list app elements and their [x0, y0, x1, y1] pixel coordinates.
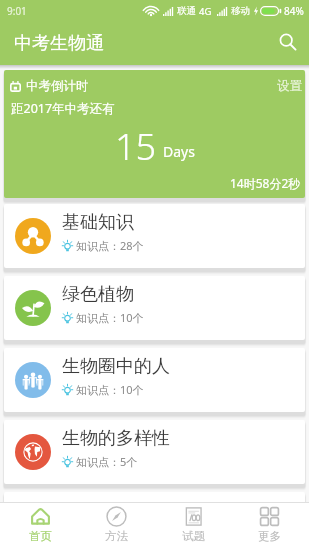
staticText: 生物圈中的人 — [62, 355, 170, 378]
staticText: 15 — [115, 122, 157, 171]
staticText: 中考生物通 — [14, 32, 104, 55]
button[interactable]: 更多 — [232, 503, 306, 550]
button[interactable]: 生物圈中的人 — [4, 348, 305, 412]
staticText: 方法 — [105, 529, 128, 543]
staticText: 移动 — [231, 5, 250, 17]
staticText: 更多 — [258, 529, 281, 543]
button[interactable]: 中考倒计时 — [4, 70, 305, 198]
staticText: 联通 — [177, 5, 196, 17]
staticText: 生物的多样性 — [62, 427, 170, 450]
staticText: 9:01 — [7, 4, 27, 18]
staticText: 知识点：28个 — [76, 238, 144, 253]
button[interactable]: 生物的多样性 — [4, 420, 305, 484]
staticText: 中考倒计时 — [26, 78, 89, 94]
staticText: 绿色植物 — [62, 283, 134, 306]
staticText: 14时58分2秒 — [230, 175, 301, 191]
staticText: 首页 — [29, 529, 52, 543]
staticText: 知识点：5个 — [76, 454, 138, 469]
button[interactable]: 基础知识 — [4, 204, 305, 268]
staticText: 设置 — [277, 78, 302, 94]
staticText: Days — [163, 142, 195, 161]
staticText: 基础知识 — [62, 211, 134, 234]
staticText: 试题 — [182, 529, 205, 543]
button[interactable]: 绿色植物 — [4, 276, 305, 340]
staticText: 84% — [284, 4, 304, 18]
button[interactable]: 首页 — [3, 503, 77, 550]
button[interactable]: 试题 — [156, 503, 230, 550]
staticText: 4G — [199, 5, 212, 18]
button[interactable]: 方法 — [79, 503, 153, 550]
staticText: 距2017年中考还有 — [11, 100, 115, 117]
button[interactable]: Search — [271, 25, 305, 59]
staticText: 知识点：10个 — [76, 310, 144, 325]
staticText: 知识点：10个 — [76, 382, 144, 397]
